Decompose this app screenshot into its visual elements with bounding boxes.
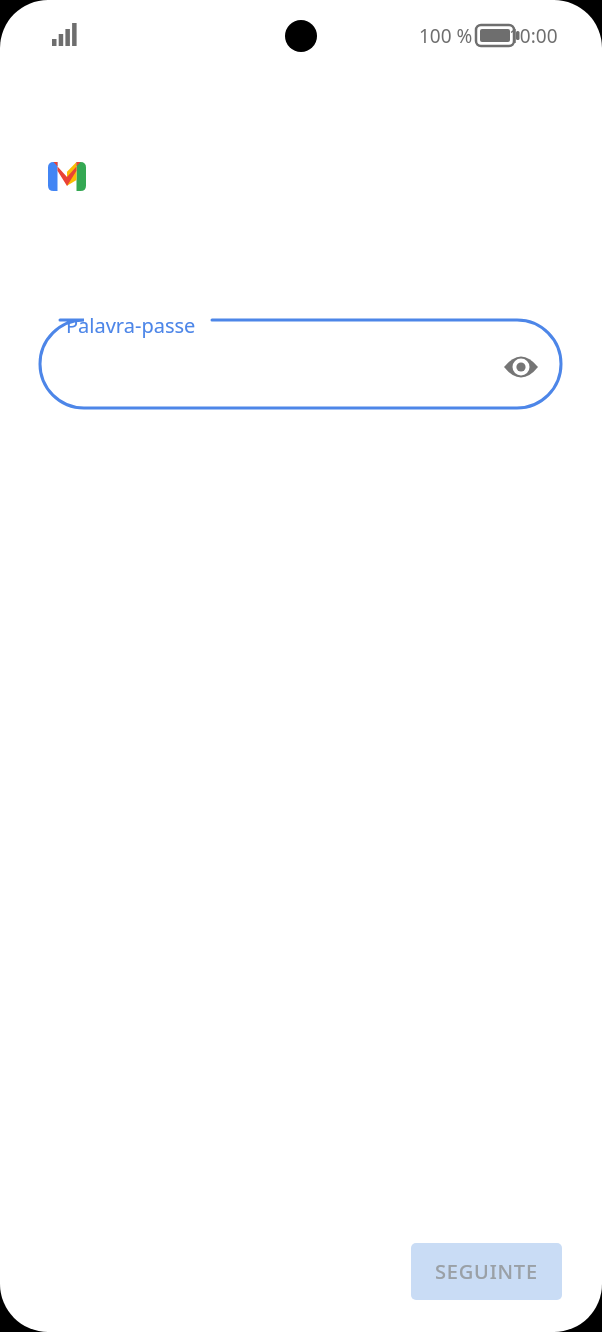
button[interactable]: Mostrar palavra-passe xyxy=(497,343,545,391)
staticText: Palavra-passe xyxy=(66,312,196,339)
staticText: SEGUINTE xyxy=(435,1258,538,1285)
button[interactable] xyxy=(40,320,561,408)
button[interactable]: SEGUINTE xyxy=(411,1243,562,1300)
staticText: 100 % xyxy=(419,23,473,49)
staticText: 10:00 xyxy=(509,23,558,49)
